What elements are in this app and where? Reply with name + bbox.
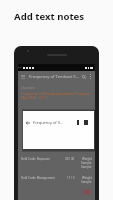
staticText: Question [21, 86, 35, 90]
staticText: 11 / 5 [67, 176, 75, 180]
staticText: Field Code: Response [21, 157, 50, 161]
staticText: Weight [82, 157, 92, 161]
button[interactable]: Field Code: Management [21, 176, 92, 184]
button[interactable]: Menu [20, 74, 26, 80]
button[interactable]: Search [81, 74, 87, 80]
button[interactable]: Field Code: Response [21, 157, 92, 169]
staticText: Sample [81, 180, 92, 184]
staticText: 30 / 30 [65, 157, 75, 161]
button[interactable]: More options [87, 74, 93, 80]
staticText: 9:41 [18, 66, 22, 69]
staticText: Frequency of Discuss Vaccination Practic… [21, 91, 92, 100]
staticText: Sample [81, 161, 92, 165]
staticText: Frequency of V... [33, 120, 63, 125]
staticText: Field Code: Management [21, 176, 55, 180]
staticText: Weight [82, 176, 92, 180]
button[interactable]: Add note [84, 189, 90, 195]
staticText: Add text notes [14, 10, 85, 23]
staticText: Sample [81, 165, 92, 169]
staticText: Frequency of Temkani Su... [29, 74, 80, 80]
